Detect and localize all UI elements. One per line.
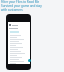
staticText: with customers: [1, 8, 23, 12]
staticText: Survived your game and stay: [1, 4, 42, 8]
staticText: Filter your Files to Read Me: [1, 0, 40, 4]
button[interactable]: Add: [28, 59, 31, 62]
